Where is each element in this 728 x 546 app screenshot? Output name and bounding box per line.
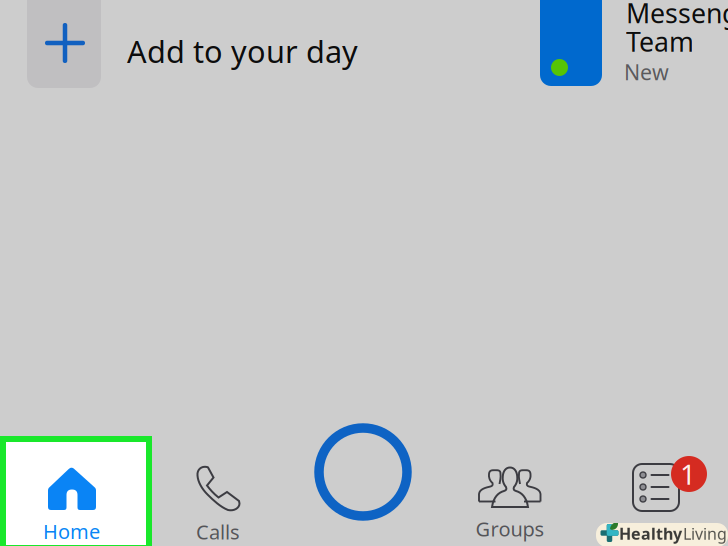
button[interactable]: Groups xyxy=(450,466,570,542)
staticText: Calls xyxy=(196,518,240,545)
staticText: Team xyxy=(626,24,694,59)
button[interactable]: Calls xyxy=(163,464,273,545)
staticText: Groups xyxy=(475,515,544,542)
button[interactable]: Home xyxy=(0,436,152,546)
staticText: 1 xyxy=(680,455,696,493)
button[interactable]: Messenger xyxy=(540,0,728,86)
button[interactable]: Add to your day xyxy=(27,0,358,88)
staticText: Home xyxy=(43,518,100,545)
staticText: Healthy xyxy=(619,523,682,544)
staticText: Living xyxy=(683,523,727,544)
staticText: Add to your day xyxy=(127,31,358,71)
button[interactable]: Menu xyxy=(633,455,706,511)
staticText: New xyxy=(624,58,669,86)
button[interactable]: Camera xyxy=(311,420,415,524)
staticText: Messenger xyxy=(626,0,728,31)
